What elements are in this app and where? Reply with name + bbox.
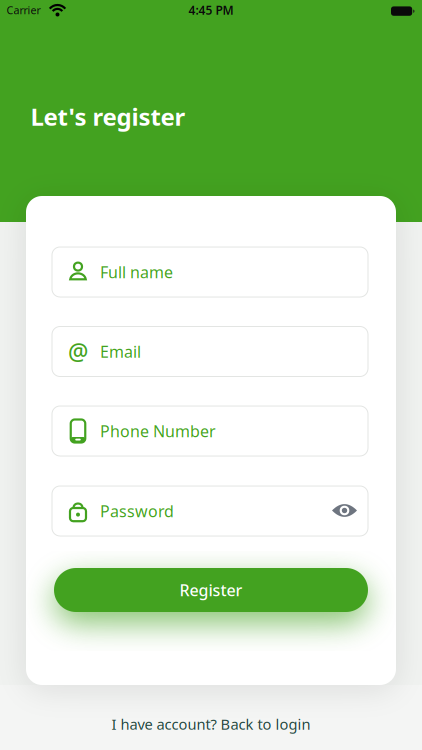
button[interactable]: @ [52, 326, 368, 376]
button[interactable]: I have account? Back to login [0, 709, 422, 739]
staticText: I have account? Back to login [111, 714, 310, 734]
staticText: Email [100, 341, 141, 362]
staticText: Phone Number [100, 420, 216, 442]
button[interactable]: Password [52, 486, 368, 536]
staticText: Let's register [30, 100, 185, 132]
button[interactable]: Register [54, 568, 368, 612]
staticText: Carrier [6, 3, 40, 17]
staticText: 4:45 PM [188, 2, 233, 18]
staticText: Full name [100, 261, 173, 283]
staticText: @ [68, 336, 88, 366]
button[interactable]: Show password [324, 490, 364, 530]
staticText: Password [100, 500, 174, 522]
button[interactable]: Phone Number [52, 406, 368, 456]
button[interactable]: Full name [52, 247, 368, 297]
staticText: Register [179, 579, 242, 601]
